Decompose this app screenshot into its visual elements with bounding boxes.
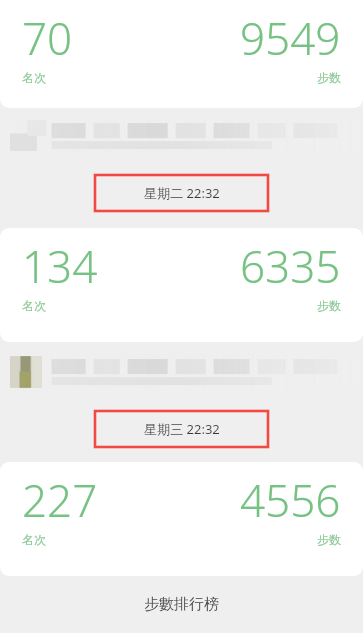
staticText: 步数 [317,70,341,85]
staticText: 步數排行榜 [144,595,219,614]
button[interactable]: 星期三 22:32 [94,410,269,448]
staticText: 名次 [22,70,46,85]
button[interactable]: 70 [0,0,363,108]
staticText: 70 [22,8,73,68]
staticText: 名次 [22,298,46,313]
staticText: 227 [22,470,98,530]
staticText: 星期三 22:32 [144,420,220,438]
staticText: 6335 [240,236,341,296]
staticText: 星期二 22:32 [144,184,220,202]
button[interactable]: 步數排行榜 [0,576,363,633]
button[interactable]: 星期二 22:32 [94,174,269,212]
staticText: 4556 [240,470,341,530]
staticText: 步数 [317,532,341,547]
staticText: 134 [22,236,98,296]
staticText: 步数 [317,298,341,313]
staticText: 名次 [22,532,46,547]
button[interactable]: 134 [0,228,363,342]
staticText: 9549 [240,8,341,68]
button[interactable]: 227 [0,462,363,576]
